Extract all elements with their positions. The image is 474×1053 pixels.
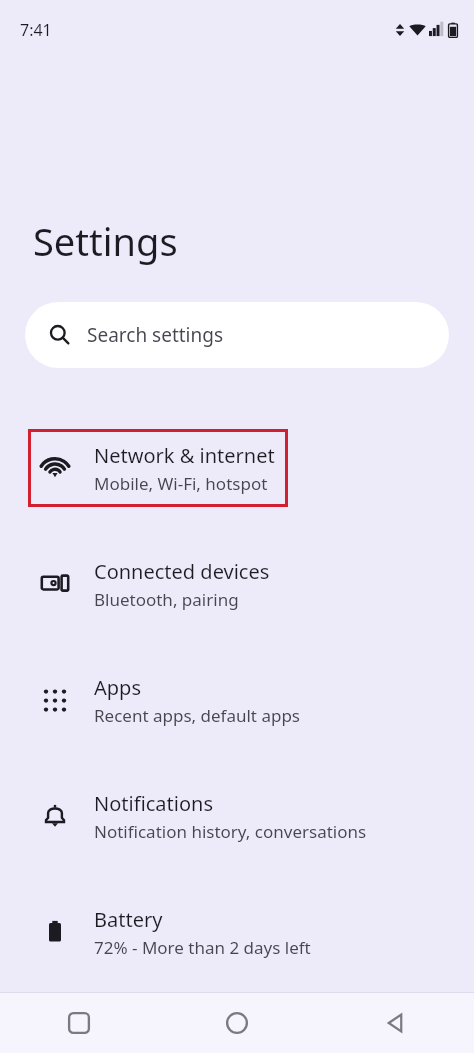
button[interactable]: Apps xyxy=(0,642,474,758)
staticText: 53% used - 30.21 GB free xyxy=(94,1025,293,1048)
staticText: Bluetooth, pairing xyxy=(94,588,239,611)
staticText: Notification history, conversations xyxy=(94,820,367,843)
staticText: Notifications xyxy=(94,790,213,817)
staticText: 72% - More than 2 days left xyxy=(94,936,311,959)
button[interactable]: Home xyxy=(158,992,316,1053)
button[interactable]: Search settings xyxy=(25,302,449,368)
staticText: Recent apps, default apps xyxy=(94,704,301,727)
staticText: Network & internet xyxy=(94,442,275,469)
staticText: Apps xyxy=(94,674,141,701)
staticText: Connected devices xyxy=(94,558,270,585)
button[interactable]: Back xyxy=(316,992,474,1053)
button[interactable]: Connected devices xyxy=(0,526,474,642)
staticText: 7:41 xyxy=(20,19,52,41)
staticText: Mobile, Wi-Fi, hotspot xyxy=(94,472,268,495)
staticText: Battery xyxy=(94,906,163,933)
button[interactable]: Network & internet xyxy=(0,410,474,526)
button[interactable]: Battery xyxy=(0,874,474,990)
staticText: Search settings xyxy=(87,322,224,348)
button[interactable]: Notifications xyxy=(0,758,474,874)
staticText: Settings xyxy=(33,215,178,267)
button[interactable]: Storage xyxy=(0,990,474,1053)
button[interactable]: Recent apps xyxy=(0,992,158,1053)
